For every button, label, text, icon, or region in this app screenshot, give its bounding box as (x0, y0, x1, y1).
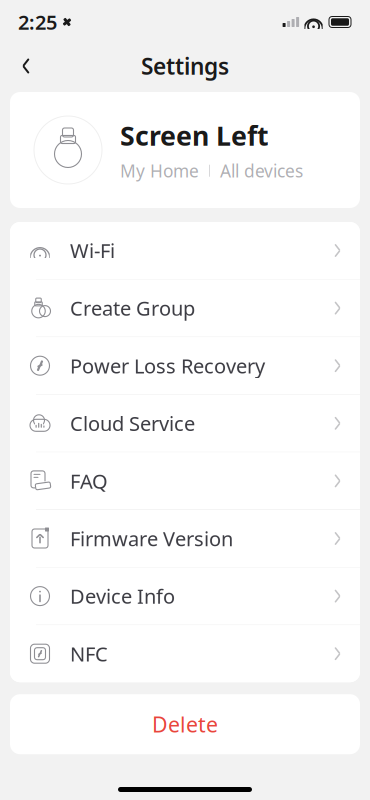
staticText: Device Info (70, 583, 175, 609)
button[interactable]: Screen Left (10, 92, 360, 208)
button[interactable]: Delete (10, 694, 360, 754)
staticText: Wi-Fi (70, 237, 115, 264)
button[interactable]: FAQ (10, 452, 360, 510)
staticText: Delete (152, 710, 218, 738)
button[interactable]: Power Loss Recovery (10, 337, 360, 395)
staticText: 2:25 (18, 9, 57, 35)
staticText: Screen Left (120, 118, 269, 153)
button[interactable]: Firmware Version (10, 510, 360, 568)
staticText: Firmware Version (70, 525, 233, 552)
staticText: NFC (70, 640, 108, 667)
staticText: Cloud Service (70, 410, 195, 437)
button[interactable]: NFC (10, 625, 360, 682)
button[interactable]: Cloud Service (10, 395, 360, 452)
staticText: FAQ (70, 468, 108, 494)
staticText: Power Loss Recovery (70, 352, 265, 379)
button[interactable]: Back (4, 44, 48, 88)
staticText: Settings (141, 51, 229, 81)
button[interactable]: Create Group (10, 280, 360, 337)
staticText: All devices (220, 159, 303, 182)
button[interactable]: Device Info (10, 568, 360, 625)
staticText: My Home (120, 159, 199, 182)
staticText: Create Group (70, 295, 195, 321)
button[interactable]: Wi-Fi (10, 222, 360, 280)
